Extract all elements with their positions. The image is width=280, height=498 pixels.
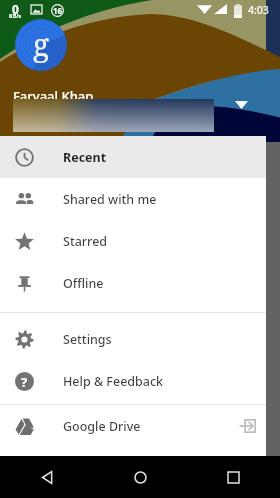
staticText: 16 xyxy=(53,5,63,16)
staticText: Help & Feedback xyxy=(63,373,164,390)
staticText: Shared with me xyxy=(63,191,157,208)
button[interactable]: Back xyxy=(0,456,94,498)
staticText: KB/s xyxy=(9,12,22,19)
staticText: Farvaal Khan xyxy=(13,87,94,105)
staticText: ? xyxy=(21,373,28,391)
button[interactable]: Switch account xyxy=(237,414,261,438)
staticText: Offline xyxy=(63,275,104,292)
staticText: Recent xyxy=(63,149,107,166)
button[interactable]: Shared with me xyxy=(0,178,266,220)
staticText: g xyxy=(33,24,50,65)
button[interactable]: Recent apps xyxy=(187,456,280,498)
button[interactable]: Starred xyxy=(0,220,266,262)
button[interactable]: ? xyxy=(0,360,266,402)
staticText: Starred xyxy=(63,233,108,250)
staticText: Google Drive xyxy=(63,418,141,435)
button[interactable]: Offline xyxy=(0,262,266,304)
button[interactable]: Settings xyxy=(0,318,266,360)
button[interactable]: Google Drive xyxy=(0,405,266,447)
staticText: Settings xyxy=(63,331,112,348)
button[interactable]: Recent xyxy=(0,136,266,178)
button[interactable]: Expand accounts xyxy=(235,101,248,109)
button[interactable]: Home xyxy=(94,456,187,498)
staticText: 4:03 xyxy=(248,3,269,17)
staticText: 0 xyxy=(12,1,19,17)
button[interactable]: Account photo xyxy=(15,19,67,71)
